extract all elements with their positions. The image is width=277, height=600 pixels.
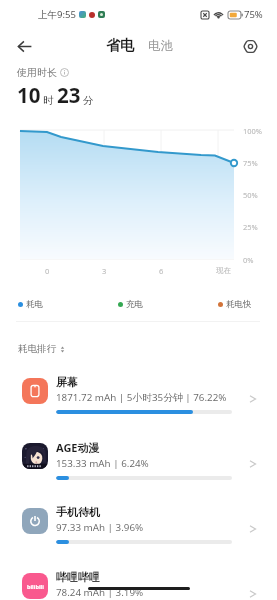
button[interactable]: 手机待机 xyxy=(0,495,277,560)
staticText: 电池 xyxy=(148,38,173,54)
staticText: 97.33 mAh | 3.96% xyxy=(56,521,144,534)
staticText: 现在 xyxy=(216,266,231,275)
button[interactable]: 耗电排行 xyxy=(16,341,68,357)
staticText: 0 xyxy=(45,266,50,276)
staticText: bilibili xyxy=(27,583,44,590)
staticText: 50% xyxy=(243,190,258,200)
staticText: 10 xyxy=(17,81,41,109)
staticText: 省电 xyxy=(106,37,134,55)
staticText: 25% xyxy=(243,222,258,232)
staticText: 哔哩哔哩 xyxy=(56,570,100,584)
button[interactable]: Back xyxy=(10,32,38,60)
staticText: 3 xyxy=(102,266,107,276)
staticText: 分 xyxy=(83,94,94,107)
staticText: 78.24 mAh | 3.19% xyxy=(56,586,144,599)
staticText: 100% xyxy=(243,126,263,136)
button[interactable]: bilibili xyxy=(0,560,277,600)
staticText: 153.33 mAh | 6.24% xyxy=(56,457,149,470)
staticText: 6 xyxy=(159,266,164,276)
button[interactable]: Settings xyxy=(236,32,264,60)
staticText: 23 xyxy=(57,81,81,109)
staticText: 1871.72 mAh | 5小时35分钟 | 76.22% xyxy=(56,391,227,404)
staticText: 时 xyxy=(43,94,54,107)
staticText: 75% xyxy=(243,158,258,168)
button[interactable]: 省电 xyxy=(101,33,139,59)
staticText: 耗电 xyxy=(26,299,43,310)
staticText: 耗电快 xyxy=(226,299,252,310)
staticText: 耗电排行 xyxy=(18,343,56,355)
staticText: AGE动漫 xyxy=(56,440,100,455)
staticText: 0% xyxy=(243,255,254,265)
staticText: 屏幕 xyxy=(56,375,78,389)
button[interactable]: 屏幕 xyxy=(0,365,277,430)
staticText: 使用时长 xyxy=(17,66,57,79)
button[interactable]: AGE动漫 xyxy=(0,430,277,495)
staticText: 75% xyxy=(244,8,263,21)
button[interactable]: 电池 xyxy=(143,34,178,58)
staticText: 手机待机 xyxy=(56,505,100,519)
staticText: 充电 xyxy=(126,299,143,310)
staticText: 上午9:55 xyxy=(38,8,76,21)
